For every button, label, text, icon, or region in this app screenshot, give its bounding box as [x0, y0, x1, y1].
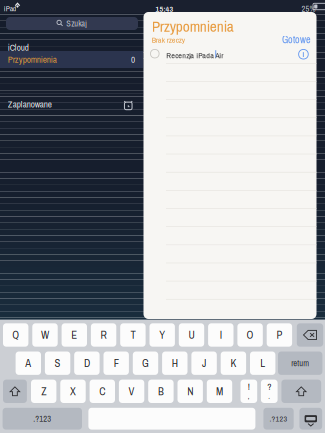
staticText: iPad: [4, 4, 16, 14]
button[interactable]: return: [278, 351, 322, 375]
button[interactable]: .?123: [3, 408, 82, 430]
button[interactable]: M: [207, 380, 232, 403]
staticText: R: [101, 328, 107, 342]
staticText: iCloud: [8, 41, 29, 54]
button[interactable]: Shift: [3, 380, 27, 403]
button[interactable]: Z: [31, 380, 56, 403]
staticText: X: [70, 384, 76, 398]
staticText: Zaplanowane: [8, 98, 52, 110]
staticText: M: [216, 384, 223, 398]
staticText: ,: [248, 391, 250, 401]
button[interactable]: I: [208, 323, 233, 347]
button[interactable]: ?: [261, 380, 278, 403]
button[interactable]: Shift: [281, 380, 321, 403]
staticText: Przypomnienia: [8, 53, 57, 66]
staticText: 0: [131, 53, 135, 66]
button[interactable]: Przypomnienia: [0, 51, 143, 68]
button[interactable]: V: [119, 380, 144, 403]
staticText: Y: [159, 328, 165, 342]
button[interactable]: H: [162, 351, 187, 375]
button[interactable]: P: [267, 323, 292, 347]
button[interactable]: R: [91, 323, 116, 347]
staticText: N: [187, 384, 193, 398]
staticText: L: [260, 356, 265, 370]
button[interactable]: .?123: [263, 408, 294, 430]
staticText: U: [188, 328, 194, 342]
staticText: J: [202, 356, 206, 370]
staticText: E: [71, 328, 77, 342]
staticText: Brak rzeczy: [152, 34, 185, 45]
button[interactable]: J: [191, 351, 217, 375]
button[interactable]: Hide keyboard: [299, 408, 322, 430]
staticText: !: [248, 380, 250, 393]
button[interactable]: [88, 408, 255, 430]
staticText: V: [129, 384, 135, 398]
button[interactable]: Reminder details: [298, 49, 309, 59]
button[interactable]: S: [45, 351, 70, 375]
button[interactable]: G: [133, 351, 158, 375]
button[interactable]: Delete: [297, 323, 323, 347]
staticText: C: [99, 384, 105, 398]
button[interactable]: W: [32, 323, 58, 347]
button[interactable]: Y: [149, 323, 175, 347]
button[interactable]: U: [179, 323, 204, 347]
button[interactable]: O: [237, 323, 263, 347]
button[interactable]: A: [16, 351, 41, 375]
staticText: P: [276, 328, 282, 342]
staticText: F: [114, 356, 119, 370]
button[interactable]: Zaplanowane: [0, 94, 143, 115]
button[interactable]: Szukaj: [6, 17, 138, 30]
staticText: .: [268, 391, 270, 401]
staticText: D: [84, 356, 90, 370]
staticText: I: [220, 328, 222, 342]
button[interactable]: Mark reminder complete: [150, 49, 159, 58]
button[interactable]: E: [62, 323, 87, 347]
staticText: return: [291, 357, 309, 369]
button[interactable]: X: [60, 380, 86, 403]
staticText: Przypomnienia: [152, 16, 234, 37]
staticText: H: [172, 356, 178, 370]
button[interactable]: Gotowe: [279, 35, 311, 45]
staticText: Gotowe: [282, 33, 311, 46]
staticText: Q: [12, 328, 19, 342]
staticText: Z: [41, 384, 46, 398]
button[interactable]: N: [177, 380, 203, 403]
staticText: W: [41, 328, 49, 342]
staticText: .?123: [269, 413, 287, 424]
staticText: A: [25, 356, 31, 370]
staticText: O: [247, 328, 254, 342]
button[interactable]: Q: [3, 323, 28, 347]
staticText: K: [230, 356, 236, 370]
button[interactable]: D: [74, 351, 100, 375]
button[interactable]: B: [148, 380, 174, 403]
staticText: Recenzja iPada Air: [166, 50, 223, 61]
button[interactable]: F: [103, 351, 129, 375]
staticText: i: [302, 49, 304, 59]
staticText: B: [158, 384, 164, 398]
staticText: G: [142, 356, 149, 370]
staticText: ?: [267, 380, 271, 393]
button[interactable]: T: [120, 323, 146, 347]
button[interactable]: C: [90, 380, 115, 403]
staticText: 25%: [301, 3, 315, 14]
staticText: Szukaj: [66, 18, 87, 29]
button[interactable]: !: [240, 380, 257, 403]
staticText: S: [55, 356, 61, 370]
button[interactable]: L: [250, 351, 275, 375]
button[interactable]: K: [221, 351, 246, 375]
staticText: 15:43: [155, 3, 173, 14]
staticText: T: [130, 328, 135, 342]
staticText: .?123: [33, 413, 51, 424]
